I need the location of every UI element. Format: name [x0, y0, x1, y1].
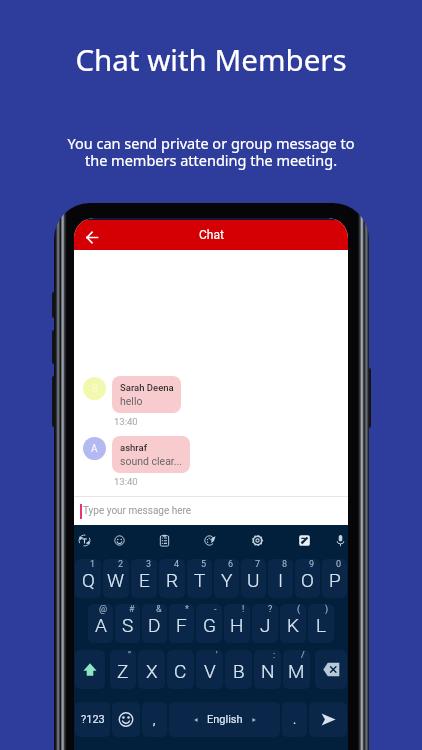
staticText: J	[260, 614, 271, 636]
staticText: 6	[228, 559, 234, 570]
button[interactable]: Send	[309, 702, 347, 737]
button[interactable]: 1	[75, 559, 101, 598]
staticText: G	[203, 614, 216, 636]
button[interactable]: Translate	[74, 527, 97, 553]
staticText: S	[92, 383, 98, 395]
button[interactable]: 4	[159, 559, 185, 598]
staticText: 5	[201, 559, 207, 570]
staticText: R	[166, 569, 179, 591]
button[interactable]: @	[88, 604, 113, 643]
staticText: 8	[282, 559, 288, 570]
button[interactable]: #	[115, 604, 140, 643]
staticText: P	[329, 569, 341, 591]
staticText: W	[107, 569, 125, 591]
button[interactable]: 5	[187, 559, 212, 598]
button[interactable]: '	[196, 650, 223, 689]
staticText: )	[325, 604, 329, 615]
staticText: O	[301, 569, 314, 591]
button[interactable]: ?	[252, 604, 278, 643]
button[interactable]: 3	[131, 559, 157, 598]
staticText: D	[148, 614, 161, 636]
button[interactable]: A	[83, 437, 106, 460]
button[interactable]: 7	[241, 559, 266, 598]
staticText: C	[174, 660, 187, 682]
staticText: M	[288, 660, 305, 682]
staticText: T	[194, 569, 206, 591]
staticText: N	[261, 660, 275, 682]
button[interactable]: !	[224, 604, 250, 643]
button[interactable]: Clipboard	[151, 527, 177, 553]
staticText: ,	[153, 713, 156, 727]
staticText: I	[278, 569, 284, 591]
staticText: Q	[82, 569, 95, 591]
button[interactable]: ?123	[75, 702, 110, 737]
staticText: 13:40	[114, 416, 138, 427]
button[interactable]: .	[282, 702, 307, 737]
button[interactable]: S	[83, 377, 106, 400]
button[interactable]: Backspace	[315, 650, 347, 689]
button[interactable]: Themes	[196, 527, 222, 553]
staticText: hello	[120, 395, 143, 407]
staticText: !	[242, 604, 245, 615]
button[interactable]: )	[308, 604, 334, 643]
button[interactable]: 8	[268, 559, 293, 598]
staticText: @	[99, 604, 108, 615]
staticText: sound clear...	[120, 455, 183, 467]
staticText: E	[139, 569, 150, 591]
staticText: A	[91, 443, 98, 455]
staticText: Sarah Deena	[120, 382, 174, 393]
staticText: 3	[146, 559, 152, 570]
button[interactable]: Sticker	[291, 527, 317, 553]
button[interactable]: :	[254, 650, 281, 689]
button[interactable]: C	[167, 650, 194, 689]
button[interactable]: 9	[295, 559, 320, 598]
staticText: Z	[117, 660, 129, 682]
button[interactable]: X	[138, 650, 165, 689]
staticText: &	[156, 604, 162, 615]
button[interactable]: Shift	[75, 650, 105, 689]
staticText: U	[247, 569, 260, 591]
button[interactable]: -	[196, 604, 222, 643]
staticText: 9	[309, 559, 315, 570]
staticText: H	[230, 614, 244, 636]
button[interactable]: Back	[79, 225, 104, 250]
staticText: Y	[221, 569, 233, 591]
staticText: 0	[336, 559, 342, 570]
staticText: *	[185, 604, 189, 615]
staticText: :	[273, 650, 276, 661]
button[interactable]: 2	[103, 559, 129, 598]
button[interactable]: ashraf	[112, 436, 190, 473]
staticText: 2	[118, 559, 124, 570]
button[interactable]: "	[110, 650, 136, 689]
staticText: (	[297, 604, 301, 615]
staticText: X	[146, 660, 158, 682]
staticText: K	[287, 614, 299, 636]
staticText: F	[176, 614, 187, 636]
button[interactable]: Voice input	[327, 527, 348, 553]
staticText: ashraf	[120, 442, 148, 453]
staticText: Chat	[199, 228, 224, 242]
button[interactable]: 0	[322, 559, 347, 598]
button[interactable]: ,	[142, 702, 167, 737]
staticText: 7	[255, 559, 261, 570]
button[interactable]: *	[169, 604, 194, 643]
button[interactable]: Sarah Deena	[112, 376, 181, 413]
button[interactable]: Emoji	[106, 527, 132, 553]
button[interactable]: &	[142, 604, 167, 643]
button[interactable]: B	[225, 650, 252, 689]
button[interactable]: English	[169, 702, 280, 737]
staticText: B	[233, 660, 245, 682]
button[interactable]: (	[280, 604, 306, 643]
button[interactable]: /	[283, 650, 310, 689]
button[interactable]: Type your message here	[74, 497, 348, 525]
staticText: "	[128, 650, 131, 661]
staticText: S	[122, 614, 134, 636]
staticText: You can send private or group message to…	[0, 133, 422, 170]
button[interactable]: Settings	[244, 527, 270, 553]
staticText: V	[204, 660, 216, 682]
button[interactable]: Emoji	[112, 702, 140, 737]
staticText: /	[301, 650, 305, 661]
staticText: 4	[174, 559, 180, 570]
staticText: -	[214, 604, 217, 615]
button[interactable]: 6	[214, 559, 239, 598]
